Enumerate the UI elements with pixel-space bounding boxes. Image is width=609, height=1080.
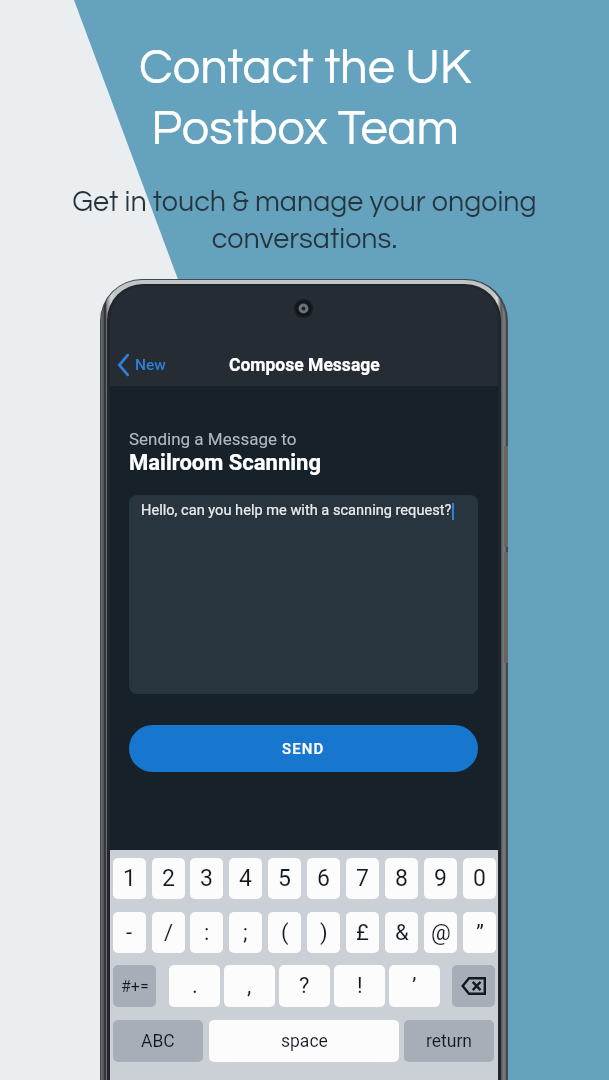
button[interactable]: return <box>404 1020 494 1062</box>
staticText: SEND <box>282 740 325 758</box>
button[interactable]: . <box>169 965 220 1007</box>
staticText: 8 <box>395 865 408 892</box>
staticText: : <box>204 920 210 946</box>
button[interactable]: 8 <box>385 858 418 899</box>
staticText: #+= <box>121 977 149 996</box>
staticText: @ <box>431 920 451 946</box>
button[interactable]: ! <box>334 965 385 1007</box>
button[interactable]: 6 <box>307 858 340 899</box>
button[interactable]: 7 <box>346 858 379 899</box>
button[interactable]: 1 <box>113 858 146 899</box>
staticText: £ <box>356 920 369 946</box>
button[interactable]: Backspace <box>452 965 495 1007</box>
staticText: 3 <box>200 865 213 892</box>
staticText: ’ <box>412 973 417 999</box>
button[interactable]: ( <box>268 912 301 953</box>
staticText: Hello, can you help me with a scanning r… <box>141 501 452 518</box>
button[interactable]: ? <box>279 965 330 1007</box>
button[interactable]: space <box>209 1020 399 1062</box>
staticText: ; <box>243 920 248 946</box>
button[interactable]: ; <box>229 912 262 953</box>
staticText: ” <box>476 920 484 946</box>
button[interactable]: @ <box>424 912 457 953</box>
button[interactable]: ’ <box>389 965 440 1007</box>
button[interactable]: & <box>385 912 418 953</box>
button[interactable]: - <box>113 912 146 953</box>
button[interactable]: £ <box>346 912 379 953</box>
staticText: / <box>164 920 174 946</box>
staticText: 0 <box>473 865 486 892</box>
staticText: Contact the UK Postbox Team <box>139 43 471 154</box>
button[interactable]: : <box>190 912 223 953</box>
button[interactable]: 5 <box>268 858 301 899</box>
staticText: 1 <box>123 865 136 892</box>
staticText: ( <box>281 920 289 946</box>
button[interactable]: 4 <box>229 858 262 899</box>
button[interactable]: 9 <box>424 858 457 899</box>
staticText: Mailroom Scanning <box>129 450 321 476</box>
staticText: 2 <box>162 865 175 892</box>
staticText: return <box>426 1031 473 1052</box>
staticText: & <box>395 920 409 946</box>
button[interactable]: Hello, can you help me with a scanning r… <box>129 495 478 694</box>
button[interactable]: 3 <box>190 858 223 899</box>
staticText: 7 <box>356 865 369 892</box>
staticText: 4 <box>239 865 252 892</box>
staticText: New <box>135 356 166 374</box>
staticText: - <box>126 920 133 946</box>
button[interactable]: , <box>224 965 275 1007</box>
button[interactable]: New <box>118 354 166 376</box>
staticText: ) <box>320 920 328 946</box>
button[interactable]: / <box>152 912 185 953</box>
button[interactable]: 0 <box>463 858 496 899</box>
button[interactable]: ” <box>463 912 496 953</box>
staticText: ! <box>357 973 363 999</box>
button[interactable]: ABC <box>113 1020 203 1062</box>
button[interactable]: SEND <box>129 725 478 772</box>
staticText: . <box>192 973 198 999</box>
staticText: 6 <box>317 865 330 892</box>
staticText: 5 <box>278 865 291 892</box>
button[interactable]: 2 <box>152 858 185 899</box>
staticText: space <box>281 1031 328 1052</box>
staticText: 9 <box>434 865 447 892</box>
staticText: Get in touch & manage your ongoing conve… <box>72 187 537 254</box>
staticText: Compose Message <box>229 355 380 376</box>
staticText: Sending a Message to <box>129 429 297 449</box>
staticText: ABC <box>141 1031 175 1052</box>
staticText: , <box>247 973 252 999</box>
staticText: ? <box>299 973 310 999</box>
button[interactable]: ) <box>307 912 340 953</box>
button[interactable]: #+= <box>113 965 156 1007</box>
